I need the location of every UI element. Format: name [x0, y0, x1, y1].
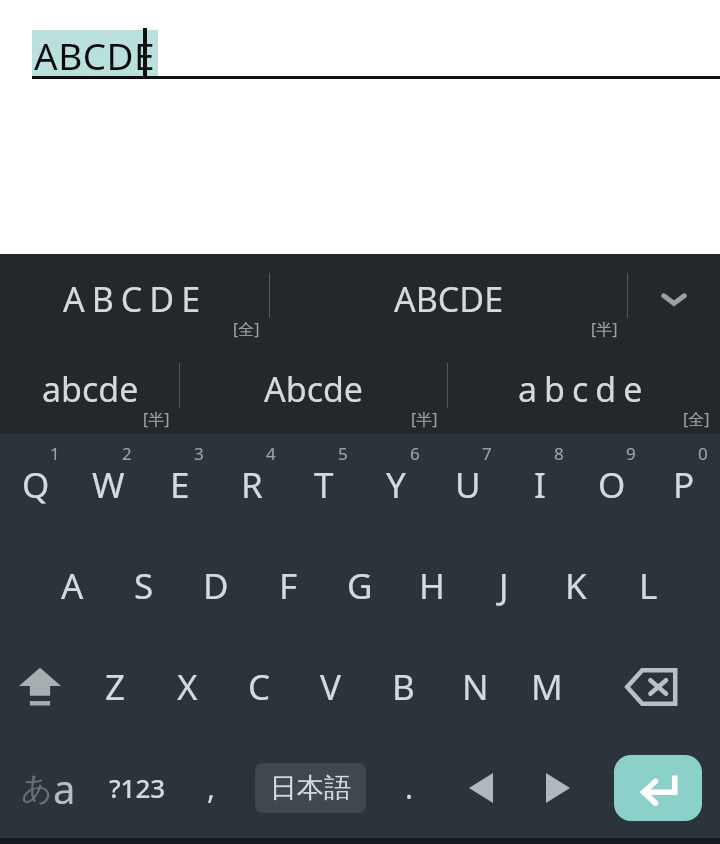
staticText: Abcde [264, 366, 364, 412]
staticText: J [499, 562, 509, 610]
staticText: O [598, 461, 626, 509]
button[interactable]: N [439, 636, 511, 737]
staticText: [半] [591, 318, 618, 340]
button[interactable]: Switch input mode [0, 737, 97, 838]
staticText: M [531, 663, 563, 711]
staticText: [半] [411, 408, 438, 430]
staticText: あ [21, 769, 53, 808]
staticText: W [92, 461, 125, 509]
staticText: H [419, 562, 445, 610]
staticText: C [248, 663, 271, 711]
button[interactable]: A [36, 535, 108, 636]
button[interactable]: L [612, 535, 684, 636]
staticText: abcde [518, 366, 650, 412]
button[interactable]: O [576, 434, 648, 535]
button[interactable]: ?123 [97, 737, 178, 838]
staticText: A [61, 562, 84, 610]
button[interactable]: X [151, 636, 223, 737]
button[interactable]: W [72, 434, 144, 535]
staticText: , [207, 767, 216, 808]
staticText: 2 [122, 442, 132, 465]
staticText: 4 [266, 442, 276, 465]
staticText: 1 [50, 442, 60, 465]
button[interactable]: H [396, 535, 468, 636]
button[interactable]: Y [360, 434, 432, 535]
staticText: Y [386, 461, 406, 509]
button[interactable]: M [511, 636, 583, 737]
staticText: F [279, 562, 298, 610]
button[interactable]: F [252, 535, 324, 636]
staticText: I [534, 461, 546, 509]
staticText: . [405, 767, 414, 808]
button[interactable]: Q [0, 434, 72, 535]
button[interactable]: E [144, 434, 216, 535]
staticText: X [177, 663, 198, 711]
button[interactable]: Expand candidates [628, 254, 720, 344]
button[interactable]: Cursor left [442, 737, 519, 838]
staticText: [全] [683, 408, 710, 430]
staticText: Z [105, 663, 126, 711]
staticText: D [203, 562, 229, 610]
staticText: 日本語 [270, 771, 351, 805]
staticText: L [639, 562, 658, 610]
button[interactable]: abcde [448, 344, 720, 434]
button[interactable]: G [324, 535, 396, 636]
staticText: ABCDE [34, 30, 156, 76]
staticText: a [53, 761, 76, 815]
staticText: 6 [410, 442, 420, 465]
staticText: Q [22, 461, 50, 509]
button[interactable]: Enter [614, 755, 702, 821]
staticText: V [320, 663, 342, 711]
button[interactable]: ABCDE [0, 254, 270, 344]
button[interactable]: K [540, 535, 612, 636]
staticText: ABCDE [394, 276, 504, 322]
button[interactable]: Shift [0, 636, 79, 737]
staticText: 7 [482, 442, 492, 465]
staticText: 5 [338, 442, 348, 465]
button[interactable]: D [180, 535, 252, 636]
button[interactable]: abcde [0, 344, 180, 434]
button[interactable]: R [216, 434, 288, 535]
staticText: U [455, 461, 481, 509]
button[interactable]: 日本語 [255, 763, 366, 813]
button[interactable]: Backspace [583, 636, 720, 737]
staticText: P [673, 461, 695, 509]
button[interactable]: S [108, 535, 180, 636]
button[interactable]: Cursor right [519, 737, 596, 838]
staticText: ?123 [109, 770, 166, 805]
staticText: 0 [698, 442, 708, 465]
staticText: 9 [626, 442, 636, 465]
button[interactable]: I [504, 434, 576, 535]
button[interactable]: T [288, 434, 360, 535]
button[interactable]: Abcde [180, 344, 448, 434]
button[interactable]: Z [79, 636, 151, 737]
staticText: T [314, 461, 334, 509]
staticText: 3 [194, 442, 204, 465]
staticText: [半] [143, 408, 170, 430]
button[interactable]: U [432, 434, 504, 535]
button[interactable]: C [223, 636, 295, 737]
staticText: G [347, 562, 373, 610]
button[interactable]: V [295, 636, 367, 737]
staticText: abcde [42, 366, 139, 412]
staticText: 8 [554, 442, 564, 465]
button[interactable]: P [648, 434, 720, 535]
staticText: ABCDE [63, 276, 208, 322]
staticText: B [392, 663, 415, 711]
button[interactable]: B [367, 636, 439, 737]
staticText: E [170, 461, 190, 509]
staticText: N [462, 663, 489, 711]
button[interactable]: ABCDE [270, 254, 628, 344]
button[interactable]: . [376, 737, 442, 838]
button[interactable]: , [178, 737, 244, 838]
staticText: K [565, 562, 587, 610]
staticText: R [241, 461, 263, 509]
staticText: S [134, 562, 154, 610]
button[interactable]: J [468, 535, 540, 636]
staticText: [全] [233, 318, 260, 340]
